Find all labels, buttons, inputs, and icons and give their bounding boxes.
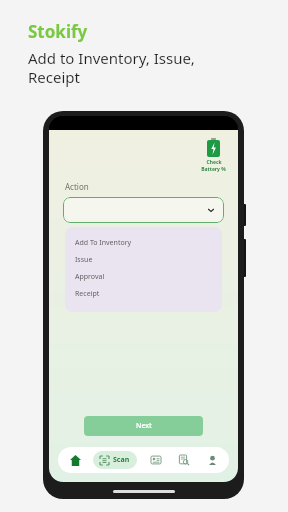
staticText: Approval: [75, 272, 105, 282]
button[interactable]: Receipt: [75, 285, 222, 302]
staticText: Check: [206, 159, 222, 166]
button[interactable]: Records: [146, 450, 166, 470]
staticText: Stokify: [28, 20, 88, 43]
button[interactable]: Next: [84, 416, 203, 436]
staticText: Next: [136, 421, 152, 431]
button[interactable]: Search Reports: [174, 450, 194, 470]
staticText: Action: [65, 181, 89, 192]
button[interactable]: Profile: [202, 450, 222, 470]
button[interactable]: Action dropdown: [63, 197, 224, 223]
button[interactable]: Scan: [93, 451, 137, 469]
staticText: Receipt: [75, 289, 100, 299]
button[interactable]: Issue: [75, 251, 222, 268]
button[interactable]: Add To Inventory: [75, 234, 222, 251]
button[interactable]: Check Battery Percent: [197, 136, 230, 175]
staticText: Battery %: [201, 166, 226, 173]
button[interactable]: Approval: [75, 268, 222, 285]
staticText: Add To Inventory: [75, 238, 132, 248]
button[interactable]: Home: [65, 450, 85, 470]
staticText: Scan: [113, 455, 130, 465]
staticText: Add to Inventory, Issue, Receipt: [28, 48, 195, 87]
staticText: Issue: [75, 255, 93, 265]
